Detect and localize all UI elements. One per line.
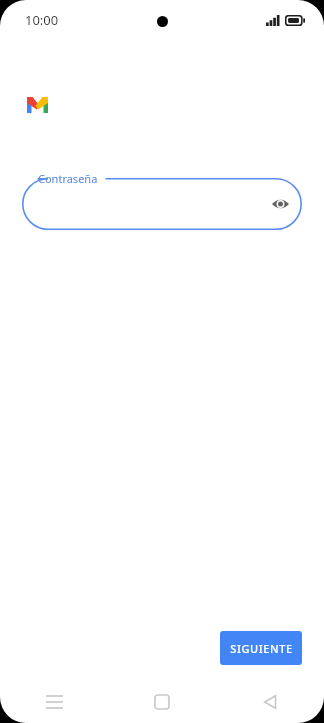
staticText: 10:00 (25, 11, 59, 29)
staticText: SIGUIENTE (230, 641, 293, 656)
button[interactable]: Mostrar contraseña (22, 178, 302, 230)
button[interactable]: SIGUIENTE (220, 631, 302, 665)
button[interactable]: Inicio (108, 680, 216, 723)
button[interactable]: Recientes (0, 680, 108, 723)
button[interactable]: Mostrar contraseña (266, 190, 294, 218)
staticText: Contraseña (38, 171, 98, 186)
button[interactable]: Atrás (216, 680, 324, 723)
